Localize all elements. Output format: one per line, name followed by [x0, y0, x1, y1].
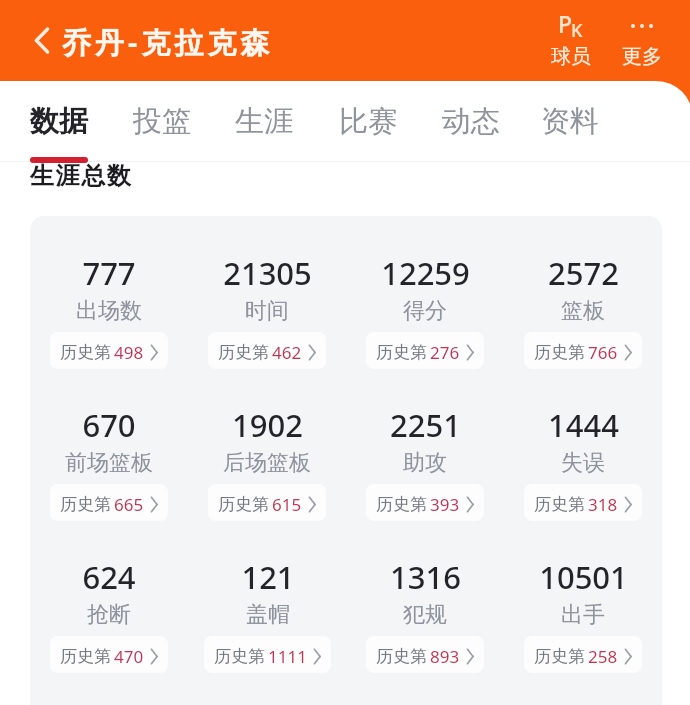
staticText: 1444 [548, 404, 619, 446]
button[interactable]: 1902 [188, 404, 346, 534]
staticText: 1316 [390, 556, 461, 598]
staticText: 历史第 [218, 494, 269, 515]
button[interactable]: Back [26, 24, 58, 56]
button[interactable]: 10501 [504, 556, 662, 686]
staticText: 犯规 [403, 601, 447, 629]
button[interactable]: 624 [30, 556, 188, 686]
staticText: 数据 [30, 103, 88, 140]
staticText: P [558, 8, 573, 39]
button[interactable]: 2251 [346, 404, 504, 534]
button[interactable]: 生涯 [221, 96, 307, 147]
staticText: 抢断 [87, 601, 131, 629]
staticText: 670 [82, 404, 136, 446]
staticText: 历史第 [60, 646, 111, 667]
staticText: 历史第 [376, 646, 427, 667]
staticText: 时间 [245, 297, 289, 325]
staticText: 更多 [622, 44, 662, 69]
button[interactable]: 比赛 [325, 96, 411, 147]
staticText: 665 [114, 493, 144, 516]
staticText: 470 [114, 645, 144, 668]
staticText: 资料 [541, 103, 599, 140]
button[interactable]: 777 [30, 252, 188, 382]
button[interactable]: 1444 [504, 404, 662, 534]
staticText: 318 [588, 493, 618, 516]
staticText: 投篮 [133, 103, 191, 140]
staticText: 助攻 [403, 449, 447, 477]
staticText: 2251 [390, 404, 461, 446]
staticText: 前场篮板 [65, 449, 153, 477]
staticText: 历史第 [534, 342, 585, 363]
staticText: 历史第 [60, 342, 111, 363]
staticText: 生涯 [235, 103, 293, 140]
staticText: 462 [272, 341, 302, 364]
staticText: 21305 [223, 252, 312, 294]
staticText: 276 [430, 341, 460, 364]
staticText: 766 [588, 341, 618, 364]
staticText: 球员 [551, 44, 591, 69]
staticText: 1111 [268, 645, 307, 668]
staticText: 498 [114, 341, 144, 364]
staticText: 258 [588, 645, 618, 668]
staticText: 893 [430, 645, 460, 668]
button[interactable]: 670 [30, 404, 188, 534]
staticText: 篮板 [561, 297, 605, 325]
staticText: 777 [82, 252, 136, 294]
staticText: 393 [430, 493, 460, 516]
staticText: 历史第 [376, 494, 427, 515]
staticText: 生涯总数 [30, 161, 133, 191]
staticText: 2572 [548, 252, 619, 294]
staticText: 624 [82, 556, 136, 598]
staticText: 出场数 [76, 297, 142, 325]
button[interactable]: 资料 [527, 96, 613, 147]
button[interactable]: 21305 [188, 252, 346, 382]
staticText: 得分 [403, 297, 447, 325]
staticText: K [571, 18, 583, 43]
staticText: 乔丹-克拉克森 [62, 22, 274, 62]
button[interactable]: 动态 [428, 96, 514, 147]
staticText: 10501 [539, 556, 628, 598]
button[interactable]: 2572 [504, 252, 662, 382]
button[interactable]: 投篮 [119, 96, 205, 147]
button[interactable]: 数据 [16, 96, 102, 147]
staticText: 121 [241, 556, 295, 598]
button[interactable]: 121 [188, 556, 346, 686]
staticText: 盖帽 [246, 601, 290, 629]
staticText: 12259 [381, 252, 470, 294]
staticText: 出手 [561, 601, 605, 629]
button[interactable]: 12259 [346, 252, 504, 382]
staticText: 1902 [232, 404, 303, 446]
staticText: 动态 [442, 103, 500, 140]
staticText: 历史第 [534, 494, 585, 515]
button[interactable]: More options [611, 8, 673, 74]
staticText: 历史第 [214, 646, 265, 667]
staticText: 历史第 [60, 494, 111, 515]
staticText: 后场篮板 [223, 449, 311, 477]
staticText: 历史第 [376, 342, 427, 363]
staticText: 历史第 [218, 342, 269, 363]
staticText: 失误 [561, 449, 605, 477]
button[interactable]: 1316 [346, 556, 504, 686]
staticText: 比赛 [339, 103, 397, 140]
staticText: 历史第 [534, 646, 585, 667]
button[interactable]: P [540, 8, 602, 74]
staticText: 615 [272, 493, 302, 516]
